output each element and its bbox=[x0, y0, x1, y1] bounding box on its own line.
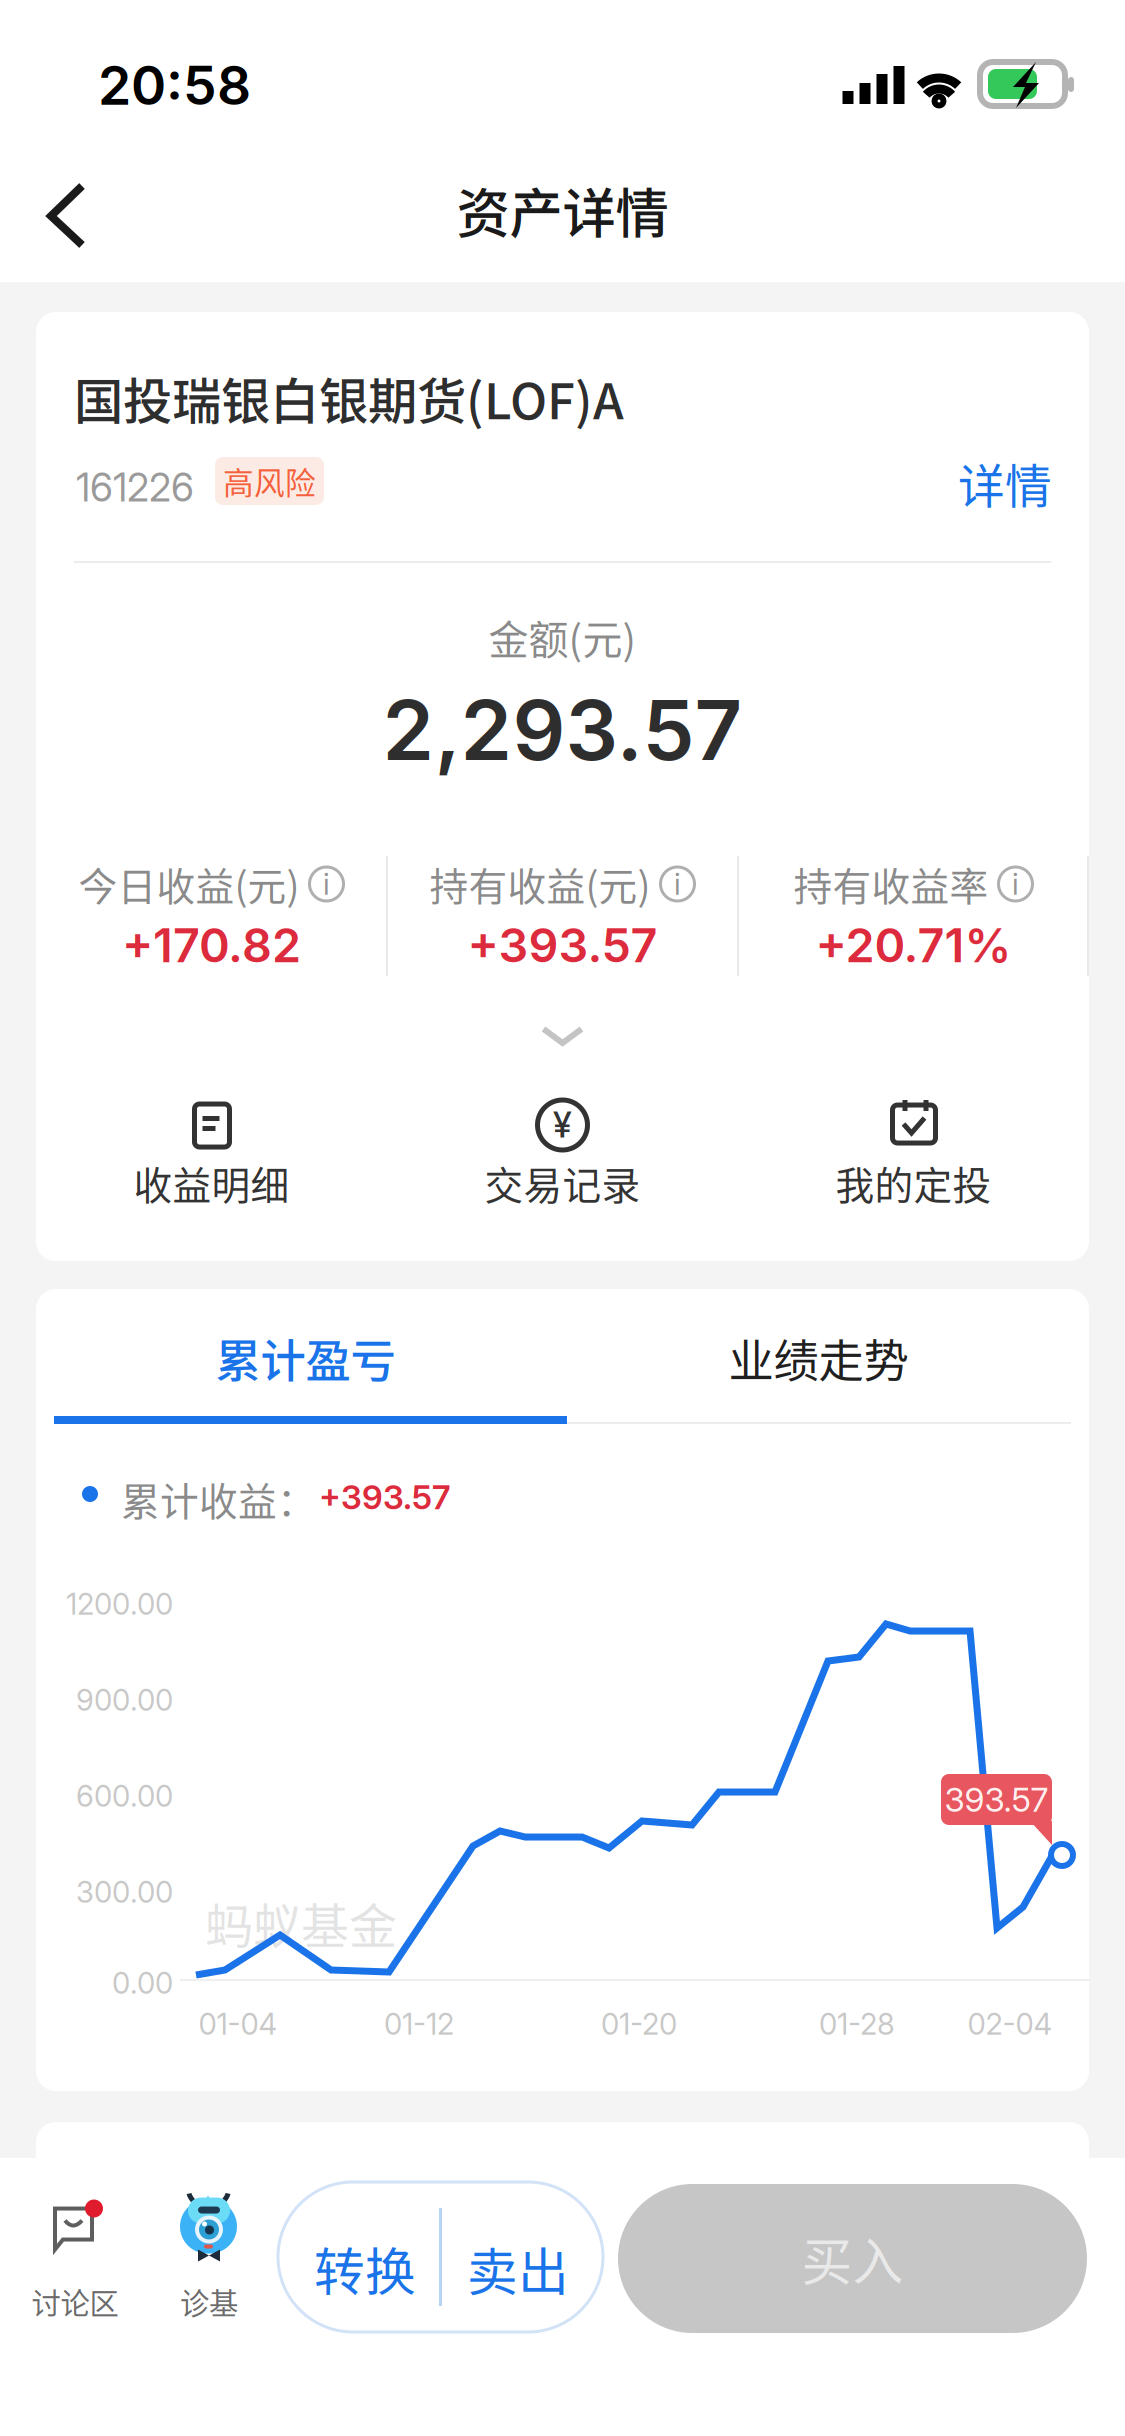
staticText: 20:58 bbox=[98, 53, 251, 117]
staticText: 161226 bbox=[76, 464, 194, 511]
button[interactable]: Expand bbox=[482, 1003, 642, 1073]
staticText: 卖出 bbox=[467, 2232, 569, 2305]
staticText: 业绩走势 bbox=[728, 1325, 908, 1391]
staticText: 2,293.57 bbox=[382, 680, 742, 780]
button[interactable]: 买入 bbox=[618, 2184, 1087, 2333]
staticText: 详情 bbox=[958, 449, 1052, 517]
button[interactable]: 我的定投 bbox=[738, 1090, 1089, 1230]
staticText: 01-28 bbox=[819, 2006, 895, 2042]
staticText: ¥ bbox=[553, 1104, 572, 1146]
staticText: 393.57 bbox=[944, 1779, 1048, 1820]
staticText: 转换 bbox=[314, 2232, 416, 2305]
staticText: 持有收益率 bbox=[793, 856, 988, 912]
staticText: +170.82 bbox=[122, 917, 301, 973]
button[interactable]: 转换 bbox=[278, 2182, 603, 2332]
staticText: 01-20 bbox=[601, 2006, 677, 2042]
staticText: +20.71% bbox=[815, 917, 1011, 973]
button[interactable]: 收益明细 bbox=[36, 1090, 387, 1230]
staticText: +393.57 bbox=[467, 917, 657, 973]
button[interactable]: 详情 bbox=[832, 448, 1052, 518]
staticText: 01-12 bbox=[384, 2006, 454, 2042]
staticText: 国投瑞银白银期货(LOF)A bbox=[74, 362, 624, 433]
button[interactable]: 诊基 bbox=[134, 2168, 284, 2318]
staticText: 讨论区 bbox=[31, 2280, 118, 2323]
staticText: 蚂蚁基金 bbox=[205, 1888, 397, 1957]
staticText: 金额(元) bbox=[488, 608, 636, 666]
button[interactable]: 累计盈亏 bbox=[42, 1299, 569, 1417]
staticText: 资产详情 bbox=[456, 171, 668, 249]
staticText: 高风险 bbox=[223, 459, 316, 503]
staticText: 我的定投 bbox=[835, 1155, 991, 1211]
button[interactable]: Back bbox=[0, 132, 140, 282]
staticText: 1200.00 bbox=[66, 1586, 173, 1622]
staticText: i bbox=[1012, 866, 1019, 902]
staticText: 900.00 bbox=[76, 1682, 173, 1718]
staticText: 交易记录 bbox=[484, 1155, 640, 1211]
staticText: 600.00 bbox=[76, 1778, 173, 1814]
staticText: +393.57 bbox=[319, 1477, 450, 1517]
staticText: 累计盈亏 bbox=[215, 1325, 395, 1391]
staticText: 02-04 bbox=[967, 2006, 1052, 2042]
button[interactable]: 业绩走势 bbox=[555, 1299, 1082, 1417]
staticText: i bbox=[674, 866, 681, 902]
staticText: 300.00 bbox=[76, 1874, 173, 1910]
button[interactable]: ¥ bbox=[387, 1090, 738, 1230]
staticText: 今日收益(元) bbox=[78, 856, 299, 912]
staticText: 持有收益(元) bbox=[429, 856, 650, 912]
button[interactable]: 讨论区 bbox=[0, 2168, 150, 2318]
staticText: 累计收益： bbox=[121, 1471, 316, 1527]
staticText: i bbox=[323, 866, 330, 902]
staticText: 收益明细 bbox=[133, 1155, 289, 1211]
staticText: 01-04 bbox=[198, 2006, 277, 2042]
staticText: 0.00 bbox=[112, 1965, 173, 2001]
staticText: 买入 bbox=[801, 2222, 903, 2295]
staticText: 诊基 bbox=[180, 2280, 238, 2323]
